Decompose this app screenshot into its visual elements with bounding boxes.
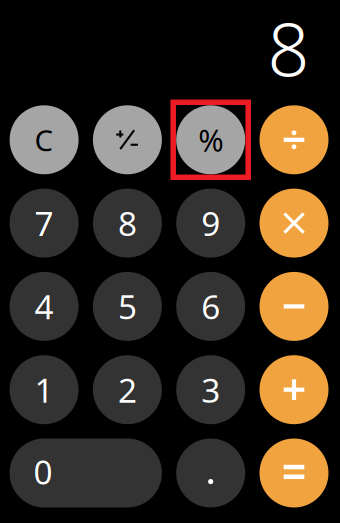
staticText: 0 bbox=[34, 449, 53, 494]
button[interactable]: Toggle sign bbox=[93, 105, 162, 174]
staticText: 5 bbox=[118, 284, 137, 329]
button[interactable]: 8 bbox=[93, 189, 162, 258]
button[interactable]: Divide bbox=[259, 105, 328, 174]
button[interactable]: 7 bbox=[10, 189, 79, 258]
staticText: % bbox=[198, 119, 223, 160]
staticText: 6 bbox=[201, 284, 220, 329]
staticText: 9 bbox=[201, 201, 220, 245]
button[interactable]: Add bbox=[259, 355, 328, 424]
button[interactable]: 1 bbox=[10, 355, 79, 424]
button[interactable]: C bbox=[10, 105, 79, 174]
button[interactable]: 2 bbox=[93, 355, 162, 424]
staticText: 3 bbox=[201, 368, 220, 412]
staticText: 2 bbox=[118, 368, 137, 412]
staticText: 1 bbox=[35, 368, 54, 412]
button[interactable]: Equals bbox=[259, 438, 328, 507]
button[interactable]: Decimal point bbox=[176, 438, 245, 507]
button[interactable]: 3 bbox=[176, 355, 245, 424]
staticText: 8 bbox=[118, 201, 137, 245]
button[interactable]: 6 bbox=[176, 272, 245, 341]
button[interactable]: 4 bbox=[10, 272, 79, 341]
button[interactable]: % bbox=[176, 105, 245, 174]
staticText: C bbox=[35, 120, 54, 159]
button[interactable]: 0 bbox=[10, 438, 162, 507]
staticText: 8 bbox=[267, 0, 309, 97]
button[interactable]: Subtract bbox=[259, 272, 328, 341]
button[interactable]: Multiply bbox=[259, 189, 328, 258]
staticText: 4 bbox=[35, 284, 54, 329]
button[interactable]: 5 bbox=[93, 272, 162, 341]
staticText: 7 bbox=[35, 201, 54, 245]
button[interactable]: 9 bbox=[176, 189, 245, 258]
